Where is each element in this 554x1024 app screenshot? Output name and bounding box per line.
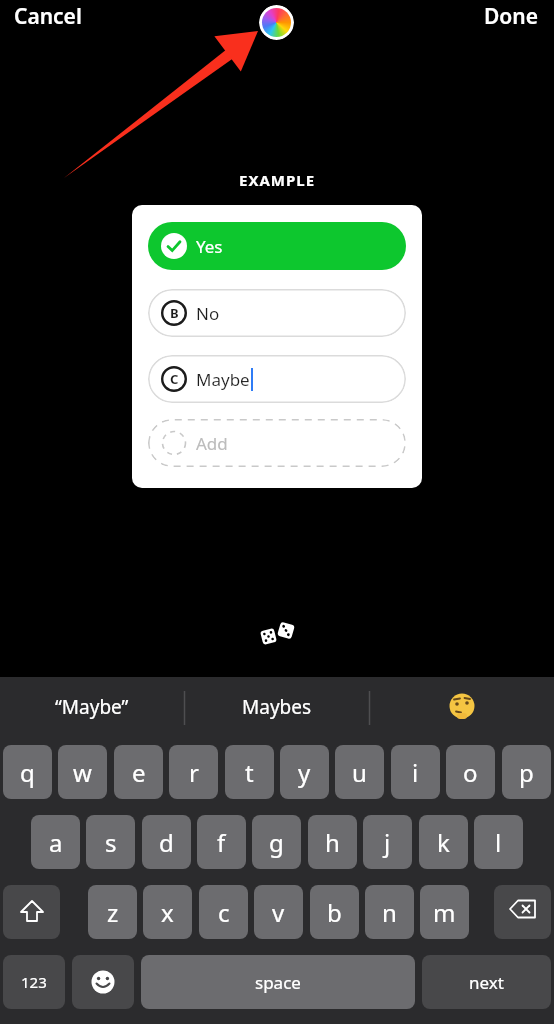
staticText: q bbox=[20, 756, 35, 789]
button[interactable]: Add bbox=[148, 419, 406, 467]
button[interactable]: j bbox=[363, 815, 412, 869]
staticText: Done bbox=[484, 2, 539, 31]
staticText: next bbox=[469, 971, 504, 994]
staticText: y bbox=[298, 756, 311, 789]
staticText: Maybes bbox=[242, 694, 312, 720]
button[interactable]: 123 bbox=[3, 955, 65, 1009]
button[interactable]: o bbox=[446, 745, 495, 799]
button[interactable]: k bbox=[419, 815, 468, 869]
button[interactable]: next bbox=[422, 955, 551, 1009]
staticText: i bbox=[412, 756, 419, 789]
staticText: v bbox=[272, 896, 285, 929]
button[interactable]: a bbox=[31, 815, 80, 869]
button[interactable]: q bbox=[3, 745, 52, 799]
staticText: f bbox=[217, 826, 226, 859]
button[interactable]: m bbox=[420, 885, 469, 939]
button[interactable]: y bbox=[280, 745, 329, 799]
staticText: c bbox=[218, 896, 230, 929]
staticText: B bbox=[170, 304, 179, 322]
staticText: space bbox=[255, 971, 301, 994]
staticText: EXAMPLE bbox=[239, 170, 316, 190]
staticText: p bbox=[519, 756, 534, 789]
button[interactable]: x bbox=[143, 885, 192, 939]
staticText: 123 bbox=[21, 972, 47, 992]
button[interactable]: l bbox=[474, 815, 523, 869]
staticText: m bbox=[433, 896, 456, 929]
button[interactable]: z bbox=[88, 885, 137, 939]
button[interactable]: u bbox=[335, 745, 384, 799]
staticText: C bbox=[170, 370, 179, 388]
button[interactable]: i bbox=[391, 745, 440, 799]
staticText: s bbox=[105, 826, 117, 859]
staticText: e bbox=[132, 756, 146, 789]
button[interactable]: n bbox=[365, 885, 414, 939]
button[interactable]: r bbox=[169, 745, 218, 799]
staticText: j bbox=[384, 826, 391, 859]
button[interactable]: v bbox=[254, 885, 303, 939]
staticText: o bbox=[463, 756, 478, 789]
button[interactable]: space bbox=[141, 955, 415, 1009]
button[interactable]: g bbox=[252, 815, 301, 869]
button[interactable]: t bbox=[225, 745, 274, 799]
button[interactable]: w bbox=[58, 745, 107, 799]
button[interactable] bbox=[370, 677, 554, 737]
staticText: d bbox=[159, 826, 174, 859]
staticText: No bbox=[196, 302, 220, 325]
button[interactable] bbox=[72, 955, 134, 1009]
staticText: a bbox=[49, 826, 63, 859]
staticText: t bbox=[245, 756, 254, 789]
staticText: Yes bbox=[196, 235, 223, 258]
staticText: Add bbox=[196, 432, 228, 455]
button[interactable]: B bbox=[148, 289, 406, 337]
button[interactable]: s bbox=[86, 815, 135, 869]
staticText: g bbox=[269, 826, 284, 859]
staticText: Maybe bbox=[196, 368, 250, 391]
button[interactable]: Done bbox=[484, 2, 539, 31]
button[interactable]: e bbox=[114, 745, 163, 799]
button[interactable]: c bbox=[199, 885, 248, 939]
button[interactable]: b bbox=[310, 885, 359, 939]
staticText: x bbox=[161, 896, 174, 929]
staticText: n bbox=[382, 896, 397, 929]
button[interactable] bbox=[3, 885, 60, 939]
staticText: “Maybe” bbox=[55, 694, 129, 720]
button[interactable]: Cancel bbox=[14, 2, 82, 31]
button[interactable]: C bbox=[148, 355, 406, 403]
staticText: w bbox=[73, 756, 92, 789]
staticText: r bbox=[189, 756, 199, 789]
staticText: h bbox=[325, 826, 340, 859]
button[interactable]: Maybes bbox=[185, 677, 369, 737]
staticText: l bbox=[495, 826, 502, 859]
button[interactable] bbox=[494, 885, 551, 939]
staticText: u bbox=[352, 756, 367, 789]
button[interactable]: h bbox=[308, 815, 357, 869]
staticText: Cancel bbox=[14, 2, 82, 31]
button[interactable]: p bbox=[502, 745, 551, 799]
staticText: b bbox=[327, 896, 342, 929]
button[interactable]: “Maybe” bbox=[0, 677, 184, 737]
staticText: k bbox=[437, 826, 450, 859]
staticText: z bbox=[107, 896, 119, 929]
button[interactable]: Yes bbox=[148, 222, 406, 270]
button[interactable]: f bbox=[197, 815, 246, 869]
button[interactable] bbox=[259, 5, 294, 40]
button[interactable]: d bbox=[142, 815, 191, 869]
